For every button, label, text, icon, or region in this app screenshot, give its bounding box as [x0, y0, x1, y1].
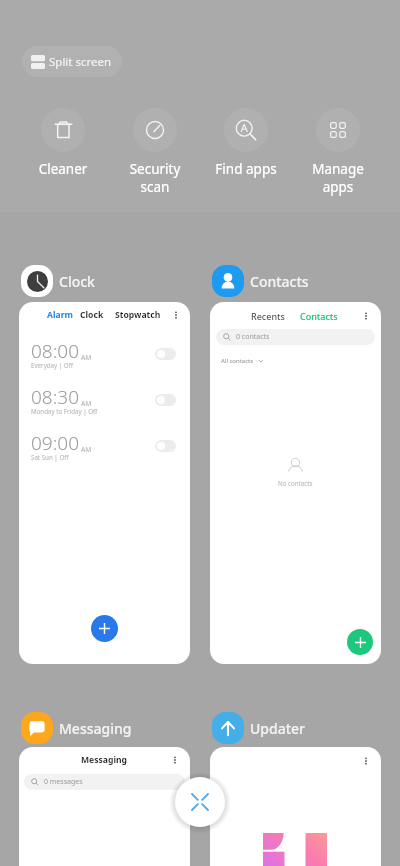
staticText: Contacts: [300, 310, 338, 322]
button[interactable]: Recents: [210, 302, 381, 664]
button[interactable]: Toggle alarm: [155, 440, 176, 452]
button[interactable]: Split screen: [22, 46, 122, 77]
staticText: 08:30: [31, 384, 80, 410]
staticText: Sat Sun | Off: [31, 453, 69, 461]
button[interactable]: More options: [210, 747, 381, 866]
button[interactable]: Contacts: [210, 265, 309, 297]
staticText: Messaging: [59, 719, 132, 738]
staticText: All contacts: [221, 357, 254, 365]
staticText: Split screen: [49, 54, 112, 70]
button[interactable]: 0 messages: [24, 774, 185, 790]
staticText: Stopwatch: [115, 309, 161, 321]
button[interactable]: Find apps: [201, 108, 291, 178]
staticText: AM: [81, 445, 92, 454]
button[interactable]: Manage apps: [293, 108, 383, 196]
button[interactable]: Messaging: [19, 747, 190, 866]
staticText: Manage apps: [293, 160, 383, 196]
button[interactable]: Clock: [19, 265, 95, 297]
button[interactable]: Add alarm: [91, 615, 118, 642]
button[interactable]: Cleaner: [18, 108, 108, 178]
staticText: Updater: [250, 719, 306, 738]
staticText: Cleaner: [18, 160, 108, 178]
button[interactable]: Security scan: [110, 108, 200, 196]
button[interactable]: Updater: [210, 712, 306, 744]
staticText: No contacts: [278, 479, 313, 487]
staticText: Messaging: [81, 754, 128, 766]
staticText: 0 messages: [44, 777, 83, 787]
staticText: Recents: [251, 310, 285, 322]
other: More options: [169, 754, 181, 766]
other: More options: [170, 309, 182, 321]
button[interactable]: Toggle alarm: [155, 394, 176, 406]
staticText: Clock: [80, 309, 104, 321]
staticText: Find apps: [201, 160, 291, 178]
staticText: Monday to Friday | Off: [31, 407, 98, 415]
button[interactable]: 0 contacts: [216, 329, 375, 345]
button[interactable]: Add contact: [347, 629, 373, 655]
staticText: Contacts: [250, 272, 309, 291]
other: More options: [360, 310, 372, 322]
staticText: Everyday | Off: [31, 361, 73, 369]
staticText: AM: [81, 353, 92, 362]
button[interactable]: Messaging: [19, 712, 132, 744]
button[interactable]: Close all apps: [167, 769, 233, 835]
staticText: 08:00: [31, 338, 80, 364]
other: More options: [360, 755, 372, 767]
staticText: AM: [81, 399, 92, 408]
staticText: Alarm: [47, 309, 73, 321]
staticText: 0 contacts: [236, 332, 270, 342]
button[interactable]: Toggle alarm: [155, 348, 176, 360]
staticText: Security scan: [110, 160, 200, 196]
staticText: 09:00: [31, 430, 80, 456]
staticText: Clock: [59, 272, 95, 291]
button[interactable]: Alarm: [19, 302, 190, 664]
